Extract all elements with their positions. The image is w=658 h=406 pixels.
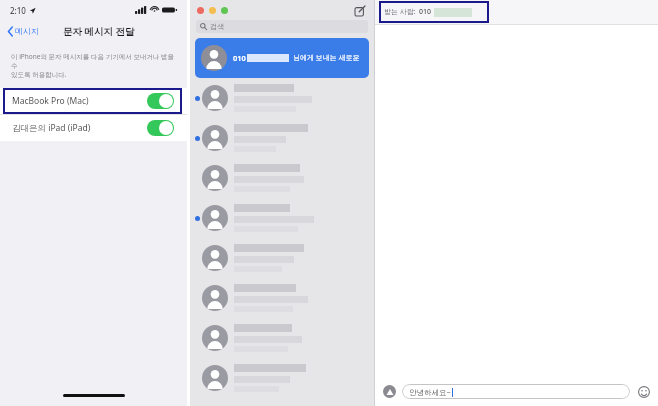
button[interactable] [221,7,228,14]
staticText: 010 [419,7,432,17]
staticText: 이 iPhone의 문자 메시지를 다음 기기에서 보내거나 받을 수 있도록 … [11,52,176,79]
staticText: 010 [233,53,246,63]
staticText: 메시지 [15,26,39,36]
staticText: 님에게 보내는 새로운 메시지 [293,53,363,63]
button[interactable]: 메시지 [6,24,41,38]
button[interactable]: 검색 [196,20,368,33]
staticText: 안녕하세요~ [409,387,451,397]
button[interactable] [190,78,374,118]
button[interactable]: 김대은의 iPad (iPad) [0,115,187,141]
button[interactable]: 안녕하세요~ [402,384,630,399]
button[interactable]: 새 메시지 작성 [353,4,366,17]
button[interactable] [190,158,374,198]
staticText: 김대은의 iPad (iPad) [12,122,91,134]
button[interactable] [147,93,174,109]
button[interactable]: 앱 [383,385,396,398]
button[interactable] [209,7,216,14]
staticText: MacBook Pro (Mac) [12,95,89,107]
button[interactable] [190,118,374,158]
staticText: 받는 사람: [384,7,416,17]
button[interactable] [190,198,374,238]
button[interactable]: 이모티콘 [637,385,650,398]
button[interactable] [190,318,374,358]
button[interactable]: 010 [195,38,369,78]
button[interactable] [190,238,374,278]
button[interactable] [190,358,374,398]
staticText: 2:10 [10,5,26,16]
button[interactable]: 받는 사람: [379,1,489,23]
staticText: 문자 메시지 전달 [63,25,135,38]
button[interactable] [147,120,174,136]
button[interactable] [197,7,204,14]
button[interactable]: MacBook Pro (Mac) [0,88,187,114]
button[interactable] [190,278,374,318]
staticText: 검색 [210,22,224,31]
